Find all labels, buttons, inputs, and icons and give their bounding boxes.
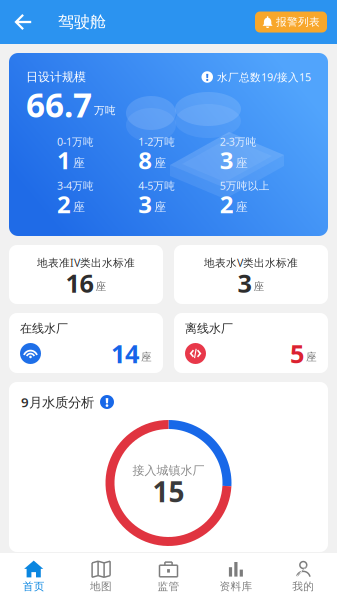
staticText: 地图 — [90, 580, 112, 593]
staticText: 5 — [290, 337, 304, 370]
button[interactable]: 资料库 — [202, 559, 270, 592]
staticText: 1 — [57, 144, 71, 176]
staticText: 接入城镇水厂 — [132, 463, 204, 478]
button[interactable]: 我的 — [270, 559, 337, 592]
staticText: 3 — [237, 266, 251, 300]
staticText: 座 — [73, 156, 85, 170]
button[interactable]: Back — [0, 0, 44, 44]
staticText: 离线水厂 — [185, 321, 233, 336]
staticText: 0-1万吨 — [57, 134, 94, 149]
staticText: 座 — [141, 350, 152, 363]
staticText: 监管 — [157, 580, 179, 593]
staticText: 4-5万吨 — [138, 178, 175, 193]
staticText: 座 — [236, 156, 248, 170]
staticText: 8 — [138, 144, 152, 176]
staticText: 座 — [154, 200, 166, 214]
staticText: 在线水厂 — [20, 321, 68, 336]
staticText: 座 — [253, 280, 264, 293]
staticText: 报警列表 — [276, 15, 320, 28]
staticText: 5万吨以上 — [220, 178, 270, 193]
staticText: 资料库 — [219, 580, 252, 593]
button[interactable]: 监管 — [135, 559, 202, 592]
staticText: 地表准IV类出水标准 — [37, 255, 135, 270]
staticText: 地表水V类出水标准 — [204, 255, 298, 270]
button[interactable]: 报警列表 — [255, 11, 327, 32]
staticText: 驾驶舱 — [58, 12, 106, 32]
staticText: 日设计规模 — [26, 70, 86, 84]
staticText: 座 — [95, 280, 106, 293]
staticText: 2-3万吨 — [220, 134, 257, 149]
staticText: 66.7 — [26, 82, 92, 127]
staticText: 3 — [138, 188, 152, 220]
staticText: 2 — [57, 188, 71, 220]
staticText: 3-4万吨 — [57, 178, 94, 193]
staticText: 水厂总数19/接入15 — [217, 70, 311, 84]
staticText: 座 — [306, 350, 317, 363]
staticText: 9月水质分析 — [21, 393, 94, 411]
staticText: 1-2万吨 — [138, 134, 175, 149]
button[interactable]: 首页 — [0, 559, 67, 592]
staticText: 16 — [65, 266, 93, 300]
staticText: 万吨 — [94, 104, 116, 117]
button[interactable]: 地图 — [67, 559, 135, 592]
staticText: 3 — [220, 144, 234, 176]
staticText: 首页 — [23, 580, 45, 593]
staticText: 2 — [220, 188, 234, 220]
staticText: 14 — [111, 337, 139, 370]
staticText: 15 — [152, 473, 184, 510]
staticText: 座 — [236, 200, 248, 214]
staticText: 座 — [154, 156, 166, 170]
staticText: 我的 — [292, 580, 314, 593]
staticText: 座 — [73, 200, 85, 214]
